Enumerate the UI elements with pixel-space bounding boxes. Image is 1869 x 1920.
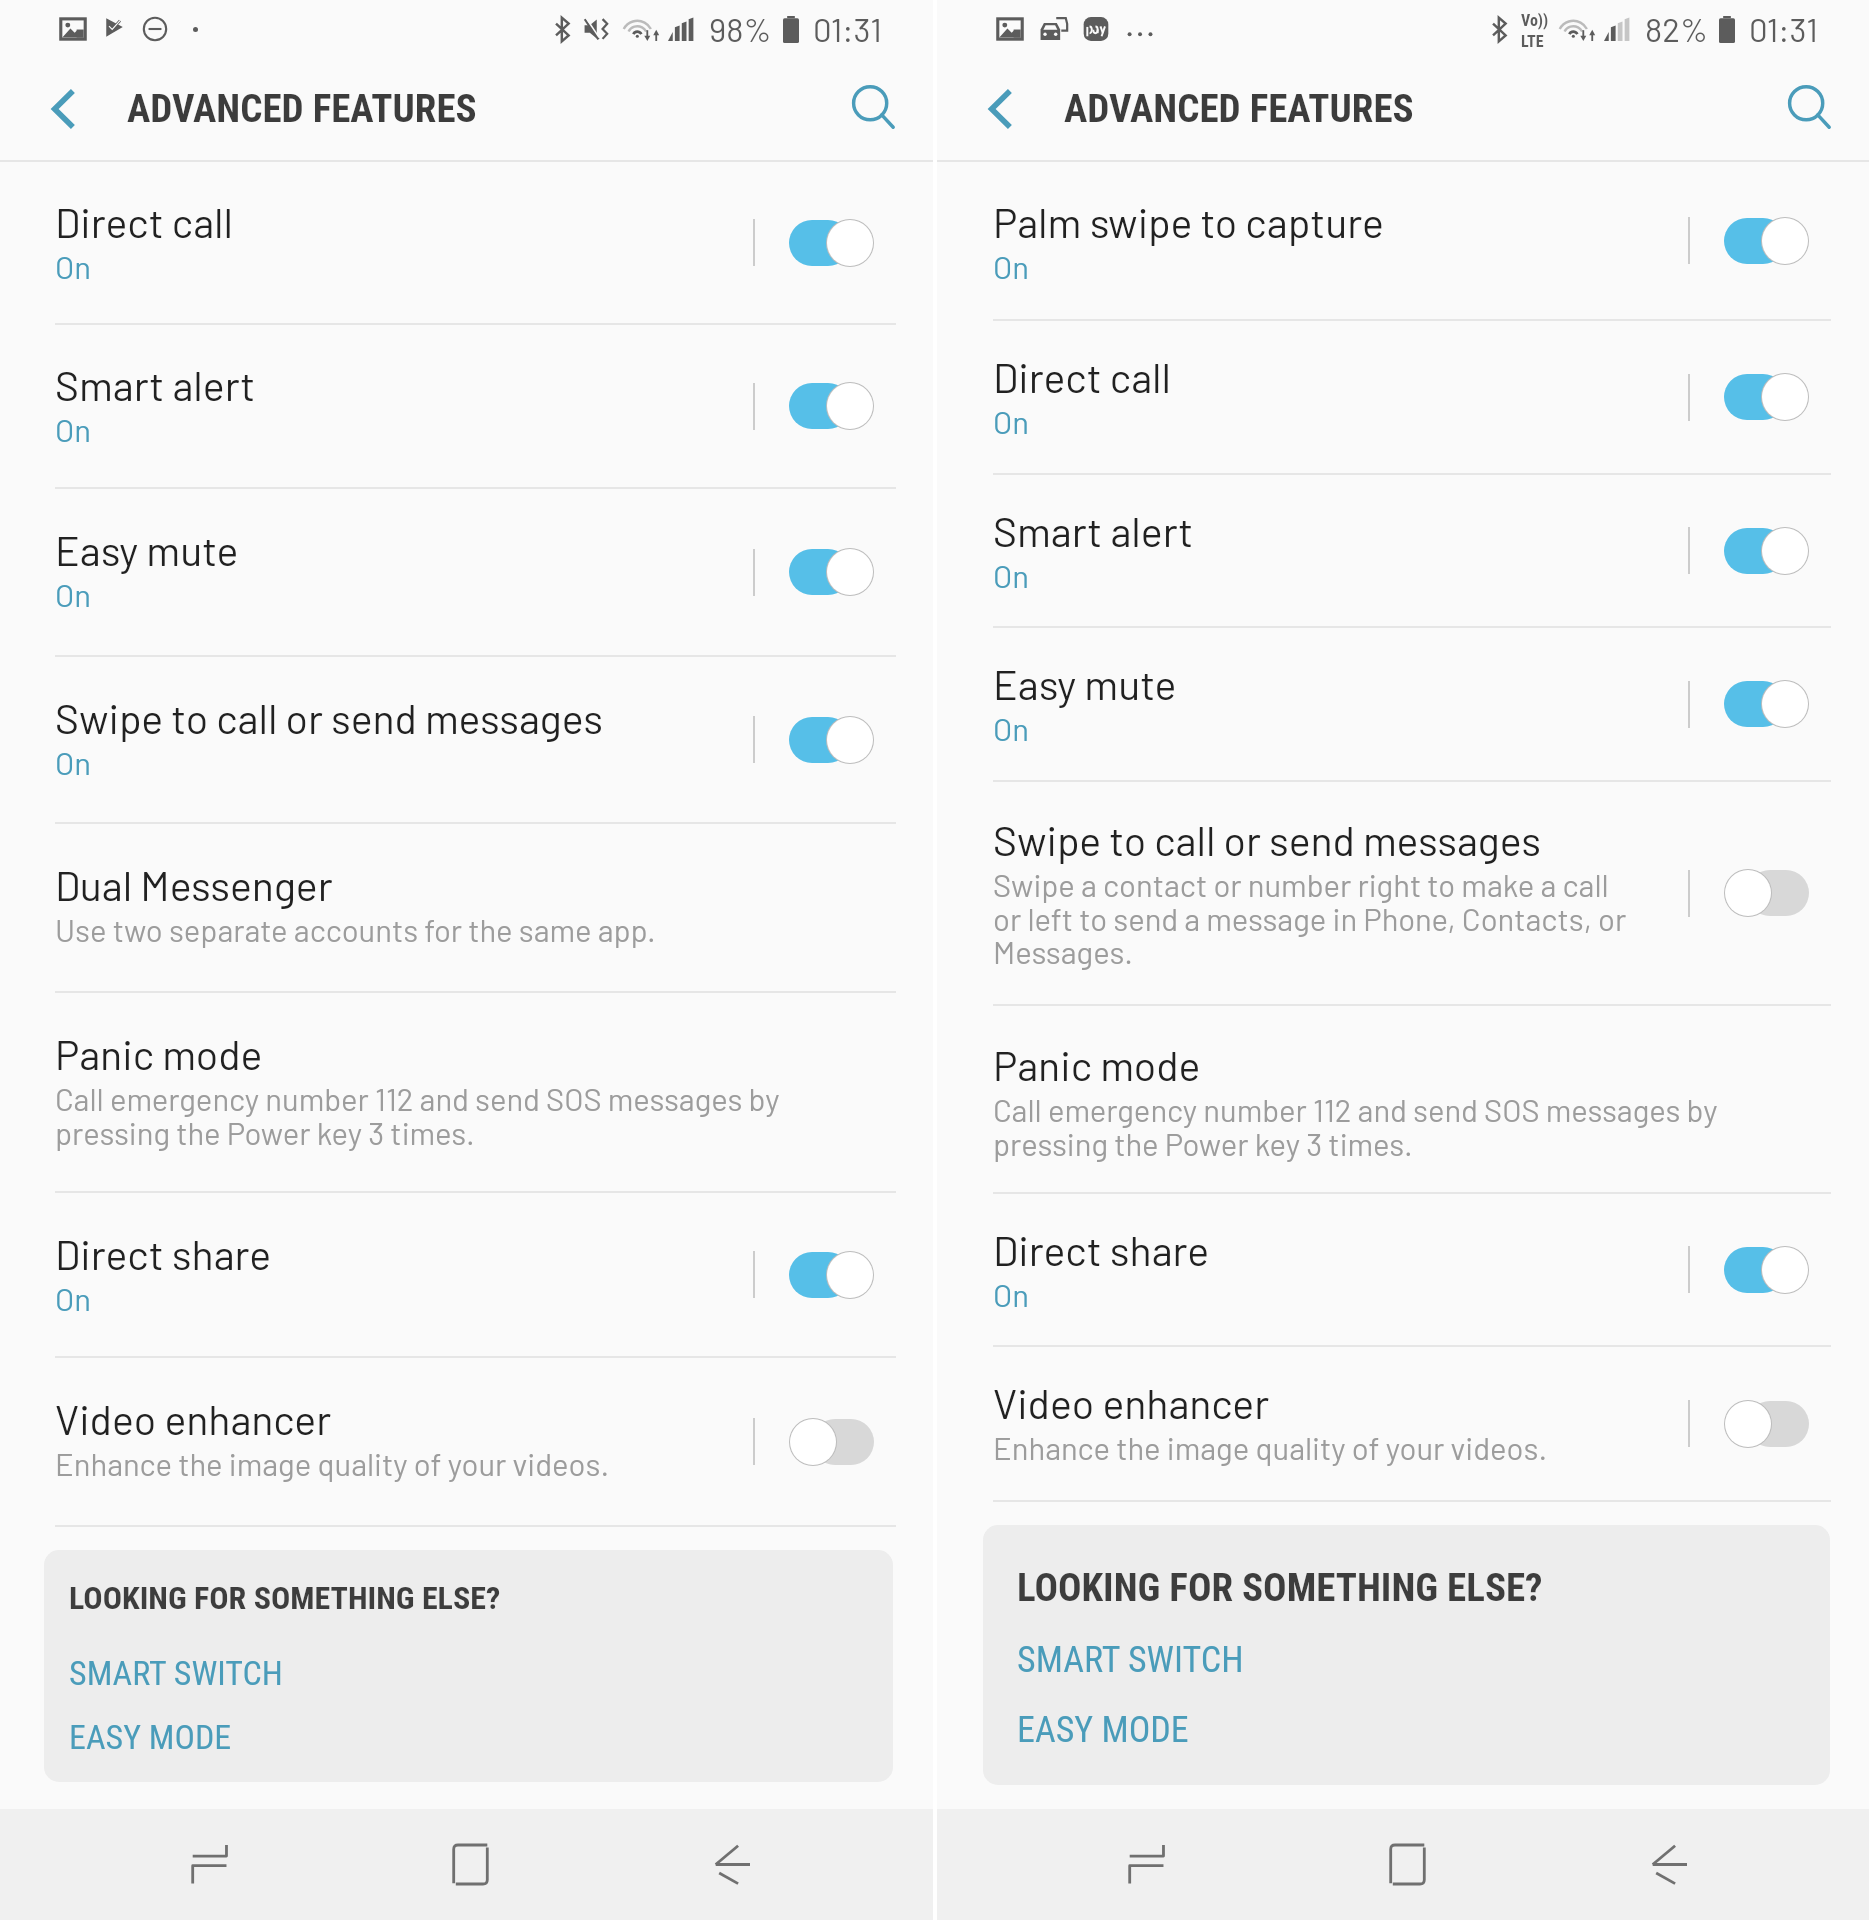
staticText: 98% <box>709 9 772 49</box>
staticText: LOOKING FOR SOMETHING ELSE? <box>1017 1565 1543 1611</box>
staticText: Easy mute <box>55 525 239 574</box>
staticText: On <box>55 1280 91 1317</box>
staticText: Direct share <box>55 1229 272 1278</box>
staticText: 01:31 <box>1749 9 1818 49</box>
button[interactable]: EASY MODE <box>1017 1709 1189 1751</box>
button[interactable]: Direct call <box>937 321 1869 473</box>
staticText: EASY MODE <box>1017 1709 1189 1751</box>
button[interactable] <box>755 1193 907 1356</box>
button[interactable]: Recent apps <box>1086 1809 1206 1920</box>
staticText: Call emergency number 112 and send SOS m… <box>55 1080 780 1151</box>
staticText: SMART SWITCH <box>1017 1639 1244 1681</box>
staticText: Panic mode <box>55 1029 263 1078</box>
staticText: Smart alert <box>993 506 1194 555</box>
staticText: Swipe to call or send messages <box>993 815 1542 864</box>
staticText: On <box>993 403 1029 440</box>
button[interactable]: SMART SWITCH <box>1017 1639 1244 1681</box>
staticText: Direct share <box>993 1225 1210 1274</box>
button[interactable] <box>755 162 907 323</box>
button[interactable] <box>755 1358 907 1525</box>
staticText: EASY MODE <box>69 1717 232 1757</box>
button[interactable] <box>1690 1347 1842 1500</box>
button[interactable]: Home <box>410 1809 530 1920</box>
staticText: Direct call <box>993 352 1171 401</box>
staticText: Enhance the image quality of your videos… <box>993 1429 1547 1466</box>
button[interactable] <box>1690 628 1842 780</box>
button[interactable]: Back <box>672 1809 792 1920</box>
button[interactable]: Recent apps <box>149 1809 269 1920</box>
button[interactable]: EASY MODE <box>69 1717 232 1757</box>
staticText: SMART SWITCH <box>69 1653 283 1693</box>
button[interactable]: SMART SWITCH <box>69 1653 283 1693</box>
staticText: On <box>55 411 91 448</box>
staticText: 01:31 <box>813 9 882 49</box>
staticText: Easy mute <box>993 659 1177 708</box>
button[interactable]: Direct call <box>0 162 933 323</box>
button[interactable]: Direct share <box>0 1193 933 1356</box>
button[interactable]: Home <box>1347 1809 1467 1920</box>
staticText: On <box>993 710 1029 747</box>
button[interactable] <box>1690 782 1842 1004</box>
staticText: Video enhancer <box>993 1378 1270 1427</box>
staticText: Video enhancer <box>55 1394 332 1443</box>
staticText: Dual Messenger <box>55 860 333 909</box>
staticText: On <box>55 744 91 781</box>
button[interactable] <box>1690 162 1842 319</box>
button[interactable] <box>755 657 907 822</box>
button[interactable] <box>755 325 907 487</box>
button[interactable]: Navigate up <box>963 72 1037 146</box>
staticText: Vo)) <box>1521 11 1549 30</box>
staticText: ADVANCED FEATURES <box>1064 86 1414 132</box>
staticText: 82% <box>1645 9 1708 49</box>
staticText: On <box>993 1276 1029 1313</box>
staticText: On <box>993 557 1029 594</box>
button[interactable]: Smart alert <box>937 475 1869 626</box>
staticText: Enhance the image quality of your videos… <box>55 1445 609 1482</box>
staticText: Palm swipe to capture <box>993 197 1384 246</box>
staticText: Smart alert <box>55 360 256 409</box>
button[interactable] <box>755 489 907 655</box>
button[interactable]: Dual Messenger <box>0 824 933 991</box>
button[interactable] <box>1690 321 1842 473</box>
staticText: LTE <box>1521 32 1544 47</box>
button[interactable]: Panic mode <box>0 993 933 1191</box>
button[interactable] <box>1690 475 1842 626</box>
staticText: Direct call <box>55 197 233 246</box>
button[interactable]: Easy mute <box>937 628 1869 780</box>
button[interactable]: Smart alert <box>0 325 933 487</box>
staticText: Swipe to call or send messages <box>55 693 604 742</box>
staticText: On <box>993 248 1029 285</box>
button[interactable]: Video enhancer <box>0 1358 933 1525</box>
staticText: Call emergency number 112 and send SOS m… <box>993 1091 1718 1162</box>
button[interactable]: Search <box>1773 72 1847 146</box>
button[interactable]: Video enhancer <box>937 1347 1869 1500</box>
staticText: Use two separate accounts for the same a… <box>55 911 656 948</box>
button[interactable]: Search <box>837 72 911 146</box>
staticText: On <box>55 248 91 285</box>
staticText: LOOKING FOR SOMETHING ELSE? <box>69 1579 501 1617</box>
staticText: ADVANCED FEATURES <box>127 86 477 132</box>
button[interactable]: Swipe to call or send messages <box>937 782 1869 1004</box>
button[interactable]: Panic mode <box>937 1006 1869 1192</box>
button[interactable]: Back <box>1609 1809 1729 1920</box>
button[interactable]: Swipe to call or send messages <box>0 657 933 822</box>
button[interactable]: Palm swipe to capture <box>937 162 1869 319</box>
button[interactable] <box>1690 1194 1842 1345</box>
button[interactable]: Direct share <box>937 1194 1869 1345</box>
staticText: Panic mode <box>993 1040 1201 1089</box>
staticText: On <box>55 576 91 613</box>
button[interactable]: Easy mute <box>0 489 933 655</box>
button[interactable]: Navigate up <box>26 72 100 146</box>
staticText: Swipe a contact or number right to make … <box>993 866 1627 970</box>
